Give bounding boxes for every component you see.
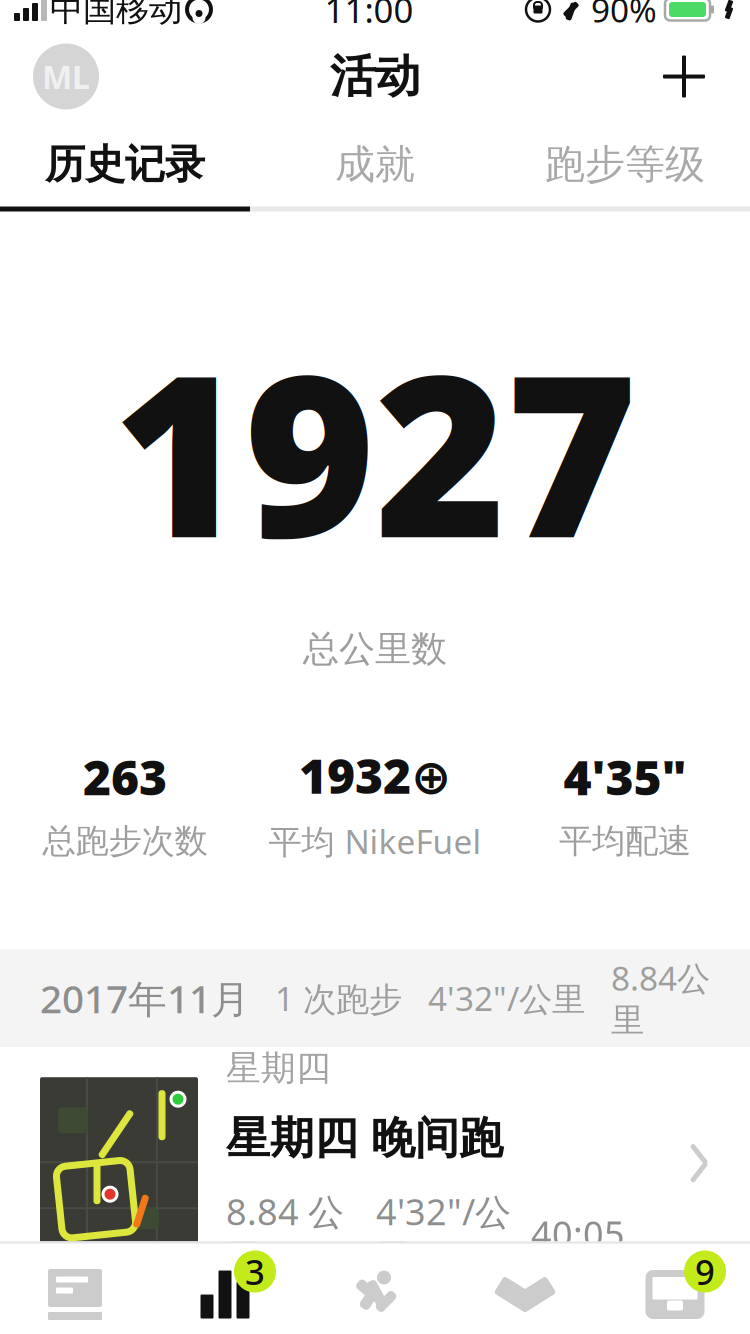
button[interactable]: Inbox	[600, 1243, 750, 1334]
staticText: 9	[695, 1248, 715, 1294]
staticText: 17 次跑步	[270, 1286, 383, 1334]
staticText: 活动	[330, 49, 420, 104]
staticText: 90%	[591, 0, 657, 32]
staticText: 4'32"/公里	[428, 976, 585, 1020]
staticText: 总跑步次数	[42, 821, 207, 861]
button[interactable]: 成就	[250, 122, 500, 206]
staticText: 8.84 公里	[226, 1187, 344, 1279]
staticText: 中国移动	[50, 0, 182, 30]
staticText: 历史记录	[45, 140, 205, 189]
button[interactable]: Coach	[450, 1243, 600, 1334]
button[interactable]: Add activity	[646, 38, 722, 114]
button[interactable]: 星期四	[0, 1047, 750, 1279]
staticText: 4'32"/公里	[376, 1187, 511, 1279]
staticText: 40:05	[531, 1210, 625, 1257]
staticText: 150.7公里	[592, 1286, 710, 1334]
staticText: 1927	[113, 301, 637, 599]
staticText: 1932⊕	[299, 743, 451, 807]
staticText: 总公里数	[303, 627, 447, 671]
staticText: 11:00	[324, 0, 413, 32]
staticText: 263	[83, 745, 167, 808]
staticText: 星期四	[226, 1047, 331, 1089]
staticText: 1 次跑步	[275, 976, 402, 1020]
button[interactable]: 跑步等级	[500, 122, 750, 206]
staticText: ML	[42, 55, 90, 98]
staticText: 2017年10月	[40, 1302, 250, 1334]
staticText: 4'35"	[563, 745, 686, 808]
staticText: 平均配速	[559, 821, 691, 861]
button[interactable]: Run	[300, 1243, 450, 1334]
staticText: 3	[245, 1248, 265, 1294]
button[interactable]: 历史记录	[0, 122, 250, 206]
button[interactable]: Profile	[28, 38, 104, 114]
staticText: 2017年11月	[40, 972, 250, 1024]
button[interactable]: Activity	[150, 1243, 300, 1334]
staticText: 跑步等级	[545, 140, 705, 189]
staticText: 成就	[335, 140, 415, 189]
staticText: 4'28"/公里	[409, 1306, 566, 1334]
button[interactable]: Feed	[0, 1243, 150, 1334]
staticText: 平均 NikeFuel	[268, 819, 481, 863]
staticText: 星期四 晚间跑	[226, 1111, 503, 1165]
staticText: 8.84公里	[611, 956, 710, 1041]
